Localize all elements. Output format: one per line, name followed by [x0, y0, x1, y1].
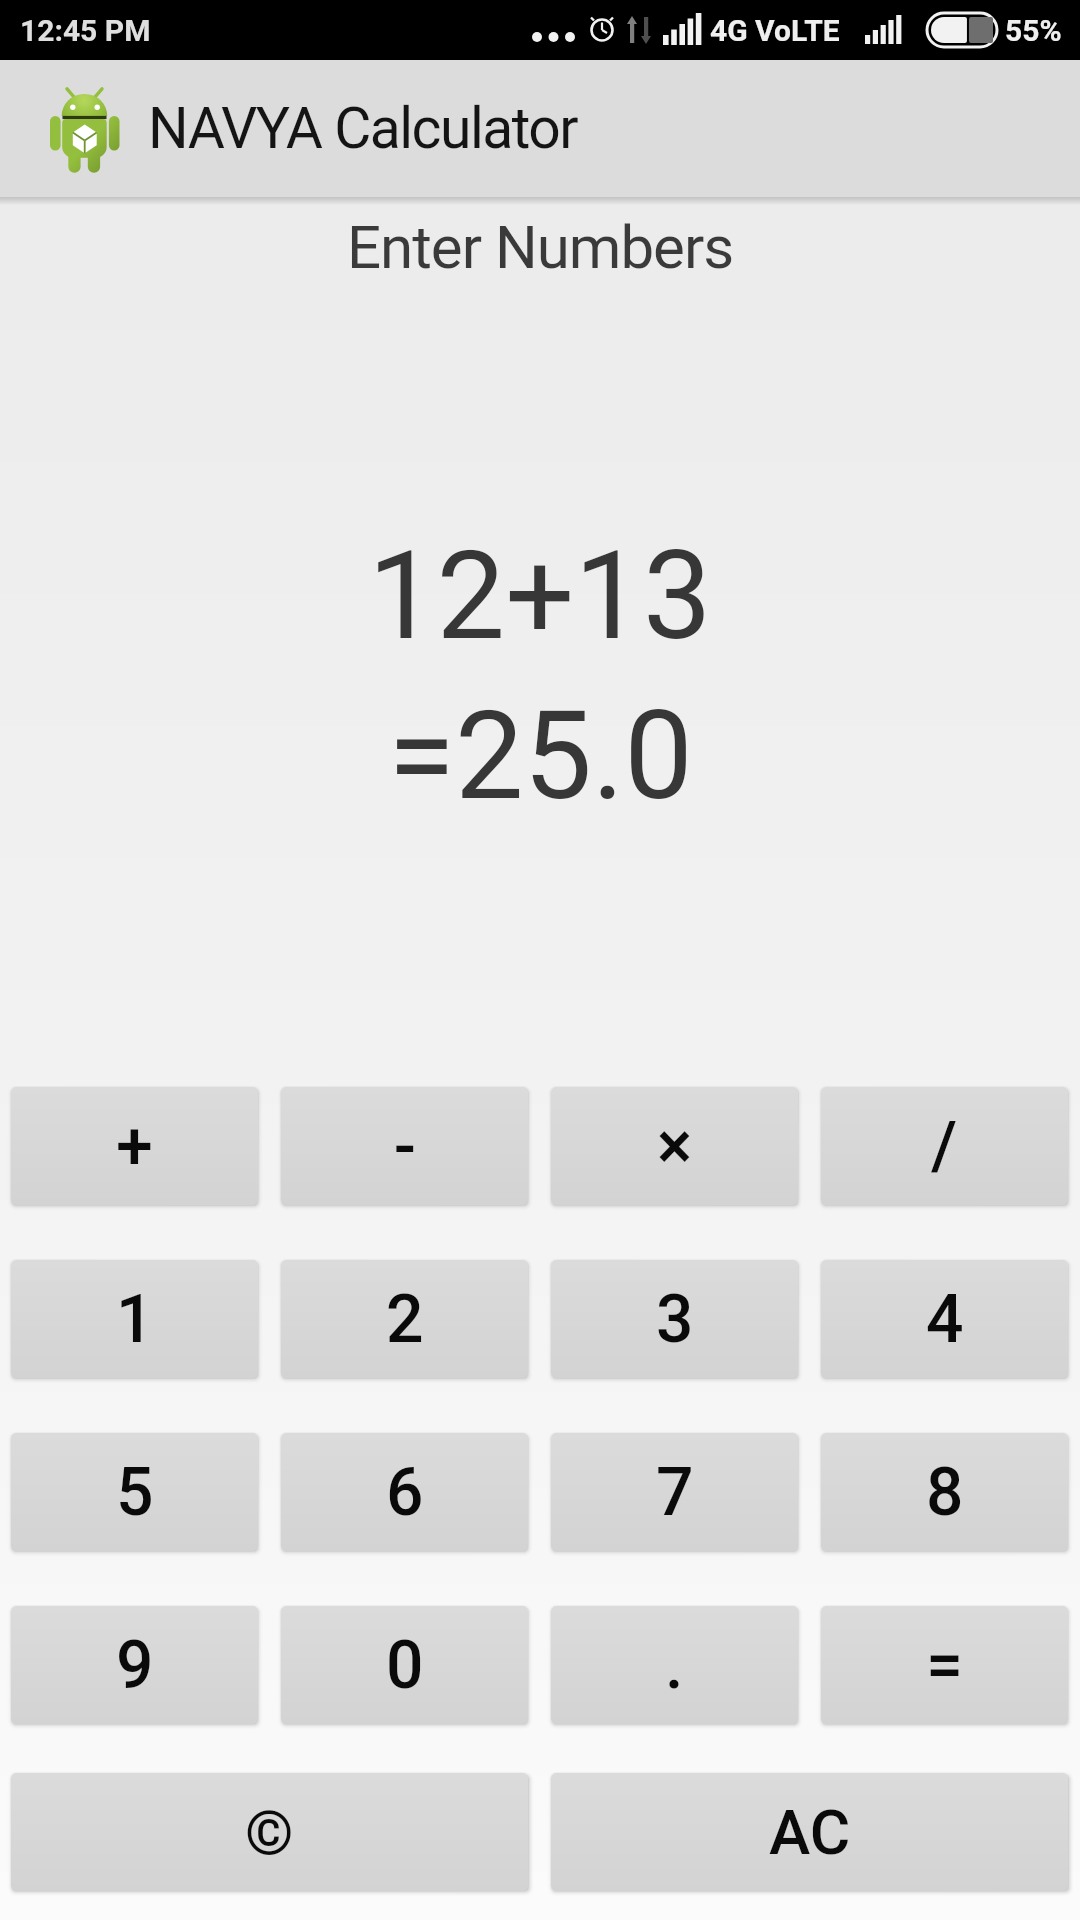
staticText: =25.0	[388, 685, 693, 828]
button[interactable]: +	[11, 1087, 258, 1205]
staticText: .	[665, 1627, 684, 1704]
button[interactable]: 3	[551, 1260, 798, 1378]
staticText: 6	[386, 1454, 424, 1531]
button[interactable]: 2	[281, 1260, 528, 1378]
staticText: 3	[656, 1281, 694, 1358]
button[interactable]: 6	[281, 1433, 528, 1551]
staticText: 12+13	[368, 525, 712, 668]
staticText: 4G VoLTE	[710, 13, 840, 48]
button[interactable]: 0	[281, 1606, 528, 1724]
staticText: /	[931, 1108, 958, 1185]
staticText: ©	[245, 1796, 294, 1869]
staticText: Enter Numbers	[347, 212, 734, 282]
staticText: ×	[657, 1108, 693, 1185]
button[interactable]: AC	[551, 1773, 1068, 1891]
staticText: 7	[656, 1454, 694, 1531]
staticText: 12:45 PM	[20, 13, 151, 48]
staticText: 2	[386, 1281, 424, 1358]
button[interactable]: =	[821, 1606, 1068, 1724]
staticText: NAVYA Calculator	[148, 95, 578, 162]
staticText: 4	[926, 1281, 964, 1358]
button[interactable]: 4	[821, 1260, 1068, 1378]
staticText: =	[926, 1627, 963, 1704]
button[interactable]: .	[551, 1606, 798, 1724]
button[interactable]: 9	[11, 1606, 258, 1724]
staticText: +	[116, 1108, 153, 1185]
button[interactable]: ×	[551, 1087, 798, 1205]
staticText: 1	[116, 1281, 154, 1358]
staticText: 9	[116, 1627, 154, 1704]
staticText: -	[394, 1108, 416, 1185]
button[interactable]: -	[281, 1087, 528, 1205]
button[interactable]: /	[821, 1087, 1068, 1205]
button[interactable]: 7	[551, 1433, 798, 1551]
button[interactable]: 8	[821, 1433, 1068, 1551]
staticText: 0	[386, 1627, 424, 1704]
staticText: 5	[116, 1454, 154, 1531]
button[interactable]: 5	[11, 1433, 258, 1551]
staticText: 55%	[1005, 13, 1062, 48]
button[interactable]: ©	[11, 1773, 528, 1891]
button[interactable]: 1	[11, 1260, 258, 1378]
staticText: AC	[769, 1796, 851, 1869]
staticText: 8	[926, 1454, 964, 1531]
